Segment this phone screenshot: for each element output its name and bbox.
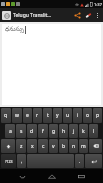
button[interactable]: Clear	[83, 10, 94, 21]
button[interactable]: t	[43, 108, 52, 123]
staticText: z	[20, 143, 23, 150]
staticText: l	[93, 128, 95, 135]
button[interactable]: b	[59, 139, 68, 153]
button[interactable]: h	[59, 124, 68, 138]
button[interactable]: v	[49, 139, 58, 153]
button[interactable]: w	[12, 108, 22, 123]
button[interactable]: o	[83, 108, 92, 123]
staticText: c	[42, 143, 45, 150]
button[interactable]: j	[69, 124, 78, 138]
button[interactable]: m	[79, 139, 88, 153]
staticText: a	[9, 128, 12, 135]
button[interactable]: n	[69, 139, 78, 153]
staticText: p	[96, 112, 100, 119]
button[interactable]: Space	[27, 154, 74, 168]
button[interactable]: z	[16, 139, 26, 153]
staticText: o	[86, 112, 90, 119]
staticText: .	[79, 158, 81, 165]
staticText: ,	[21, 158, 23, 165]
staticText: j	[73, 128, 75, 135]
button[interactable]: d	[27, 124, 37, 138]
button[interactable]: u	[63, 108, 72, 123]
button[interactable]: Recent apps	[74, 169, 88, 183]
button[interactable]: ,	[17, 154, 26, 168]
button[interactable]: i	[73, 108, 82, 123]
staticText: r	[36, 112, 39, 119]
button[interactable]: Home	[45, 169, 59, 183]
staticText: n	[72, 143, 76, 150]
staticText: s	[20, 128, 23, 135]
button[interactable]: l	[89, 124, 98, 138]
button[interactable]: x	[27, 139, 37, 153]
staticText: h	[62, 128, 66, 135]
button[interactable]: k	[79, 124, 88, 138]
staticText: m	[81, 143, 86, 150]
button[interactable]: f	[38, 124, 48, 138]
staticText: d	[30, 128, 34, 135]
staticText: e	[26, 112, 29, 119]
staticText: i	[77, 112, 79, 119]
button[interactable]: Enter	[85, 154, 102, 168]
button[interactable]: More options	[94, 12, 101, 19]
button[interactable]: Back	[15, 169, 29, 183]
staticText: Telugu Translit...	[13, 12, 72, 19]
staticText: b	[62, 143, 66, 150]
staticText: y	[56, 112, 59, 119]
button[interactable]: Share	[72, 10, 83, 21]
button[interactable]: a	[5, 124, 15, 138]
staticText: u	[66, 112, 70, 119]
button[interactable]: q	[1, 108, 11, 123]
button[interactable]: .	[75, 154, 84, 168]
button[interactable]: Backspace	[89, 139, 102, 153]
button[interactable]: Symbols	[1, 154, 16, 168]
button[interactable]: c	[38, 139, 48, 153]
staticText: v	[52, 143, 55, 150]
button[interactable]: ధనుస్సు	[2, 24, 101, 105]
button[interactable]: s	[16, 124, 26, 138]
button[interactable]: y	[53, 108, 62, 123]
staticText: q	[4, 112, 8, 119]
staticText: g	[52, 128, 56, 135]
staticText: x	[31, 143, 34, 150]
staticText: t	[47, 112, 49, 119]
staticText: ?123	[5, 159, 13, 164]
button[interactable]: p	[93, 108, 102, 123]
button[interactable]: e	[23, 108, 32, 123]
staticText: 1:37	[94, 2, 102, 7]
button[interactable]: g	[49, 124, 58, 138]
staticText: f	[42, 128, 44, 135]
button[interactable]: App icon	[2, 11, 11, 20]
staticText: ధనుస్సు	[5, 26, 24, 34]
staticText: w	[15, 112, 19, 119]
button[interactable]: r	[33, 108, 42, 123]
button[interactable]: Shift	[1, 139, 15, 153]
staticText: k	[82, 128, 85, 135]
